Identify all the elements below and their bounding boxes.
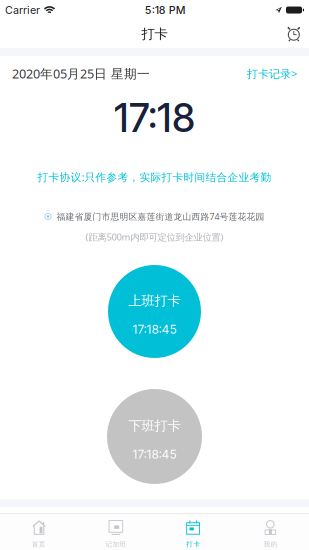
staticText: 打卡 <box>186 540 200 548</box>
staticText: 下班打卡 <box>128 417 180 434</box>
staticText: 2020年05月25日 星期一 <box>12 65 150 82</box>
staticText: 记加班 <box>105 540 126 548</box>
button[interactable]: 打卡记录> <box>247 66 297 81</box>
button[interactable]: 闹钟提醒 <box>279 22 309 46</box>
button[interactable]: 记加班 <box>77 514 154 550</box>
button[interactable]: 上班打卡 <box>108 265 201 358</box>
staticText: 打卡协议:只作参考，实际打卡时间结合企业考勤 <box>37 170 271 184</box>
button[interactable]: 下班打卡 <box>107 389 202 484</box>
button[interactable]: 首页 <box>0 514 77 550</box>
staticText: 上班打卡 <box>128 292 180 309</box>
staticText: Carrier <box>5 3 40 16</box>
staticText: 打卡记录> <box>247 66 297 81</box>
staticText: 我的 <box>263 540 277 548</box>
staticText: 17:18:45 <box>132 447 176 462</box>
button[interactable]: 我的 <box>232 514 309 550</box>
staticText: 福建省厦门市思明区嘉莲街道龙山西路74号莲花花园 <box>56 210 264 222</box>
staticText: 17:18:45 <box>132 322 176 337</box>
button[interactable]: 打卡 <box>154 514 232 550</box>
staticText: 17:18 <box>114 95 195 141</box>
staticText: (距离500m内即可定位到企业位置) <box>85 231 223 243</box>
staticText: 打卡 <box>141 26 167 42</box>
staticText: 5:18 PM <box>145 3 186 16</box>
staticText: 首页 <box>32 540 46 548</box>
